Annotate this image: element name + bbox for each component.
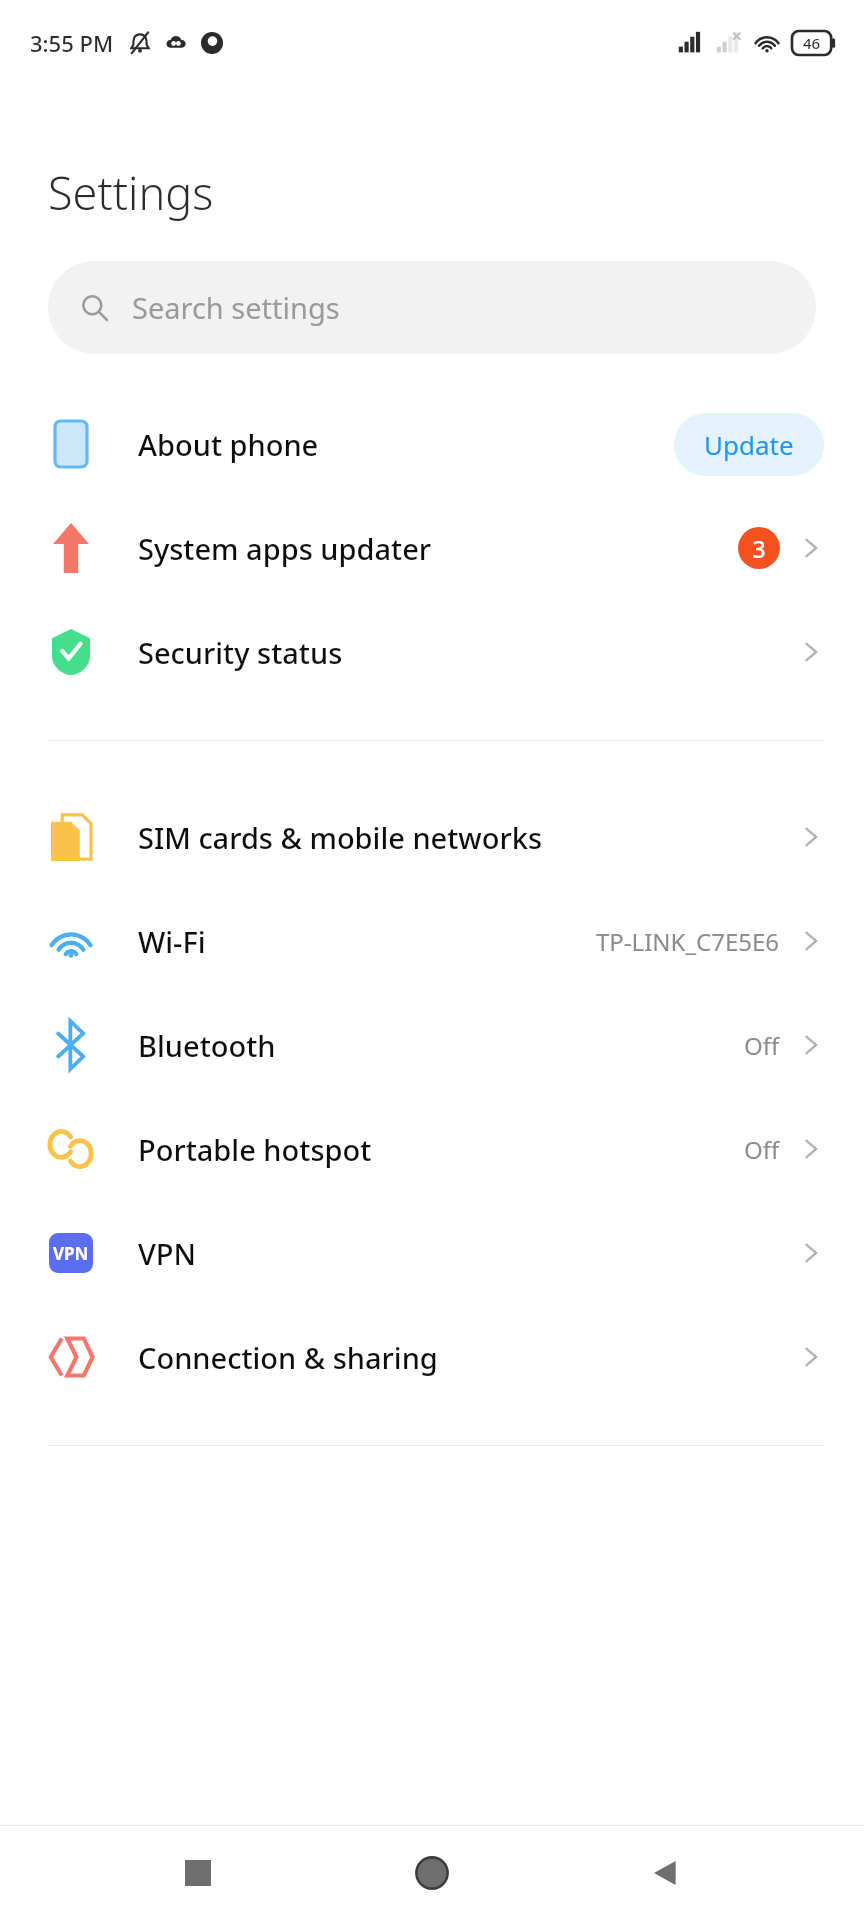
- staticText: Bluetooth: [138, 1026, 276, 1065]
- staticText: Security status: [138, 633, 343, 672]
- button[interactable]: Security status: [0, 600, 864, 704]
- staticText: Connection & sharing: [138, 1338, 438, 1377]
- staticText: 3: [752, 533, 766, 564]
- button[interactable]: Connection & sharing: [0, 1305, 864, 1409]
- staticText: System apps updater: [138, 529, 432, 568]
- staticText: SIM cards & mobile networks: [138, 818, 543, 857]
- staticText: TP-LINK_C7E5E6: [596, 925, 780, 958]
- staticText: Wi-Fi: [138, 922, 206, 961]
- staticText: Settings: [48, 162, 214, 223]
- staticText: Off: [744, 1029, 780, 1062]
- staticText: 46: [803, 33, 821, 53]
- staticText: Update: [704, 427, 794, 462]
- button[interactable]: Home: [396, 1837, 468, 1909]
- button[interactable]: Back: [630, 1837, 702, 1909]
- staticText: VPN: [53, 1242, 89, 1265]
- staticText: About phone: [138, 425, 319, 464]
- button[interactable]: Update: [674, 413, 824, 476]
- button[interactable]: Recent apps: [162, 1837, 234, 1909]
- staticText: Off: [744, 1133, 780, 1166]
- button[interactable]: SIM cards & mobile networks: [0, 785, 864, 889]
- button[interactable]: Bluetooth: [0, 993, 864, 1097]
- staticText: 3:55 PM: [30, 28, 114, 58]
- button[interactable]: Portable hotspot: [0, 1097, 864, 1201]
- button[interactable]: System apps updater: [0, 496, 864, 600]
- staticText: VPN: [138, 1234, 197, 1273]
- button[interactable]: VPN: [0, 1201, 864, 1305]
- button[interactable]: Wi-Fi: [0, 889, 864, 993]
- other: About phone: [55, 421, 87, 467]
- button[interactable]: About phone: [0, 392, 864, 496]
- staticText: Search settings: [132, 288, 340, 327]
- staticText: Portable hotspot: [138, 1130, 372, 1169]
- button[interactable]: Search settings: [48, 261, 816, 354]
